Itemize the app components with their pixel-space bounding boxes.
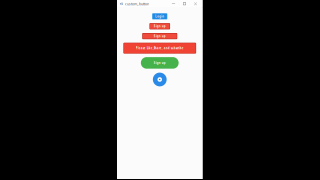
staticText: Login (155, 14, 164, 18)
button[interactable]: Close (190, 0, 201, 8)
staticText: Please Like,Share, and subscribe (136, 46, 184, 50)
staticText: custom_button (125, 1, 149, 6)
button[interactable]: Sign up (141, 57, 179, 69)
button[interactable]: Login (152, 13, 167, 19)
staticText: Sign up (154, 34, 166, 38)
button[interactable]: Sign up (149, 23, 170, 29)
button[interactable]: Maximize (179, 0, 190, 8)
staticText: Sign up (154, 24, 166, 28)
button[interactable]: Sign up (142, 33, 177, 39)
button[interactable]: Please Like,Share, and subscribe (123, 43, 196, 54)
button[interactable]: Record (153, 73, 167, 86)
button[interactable]: Minimize (168, 0, 179, 8)
staticText: Sign up (154, 61, 166, 65)
